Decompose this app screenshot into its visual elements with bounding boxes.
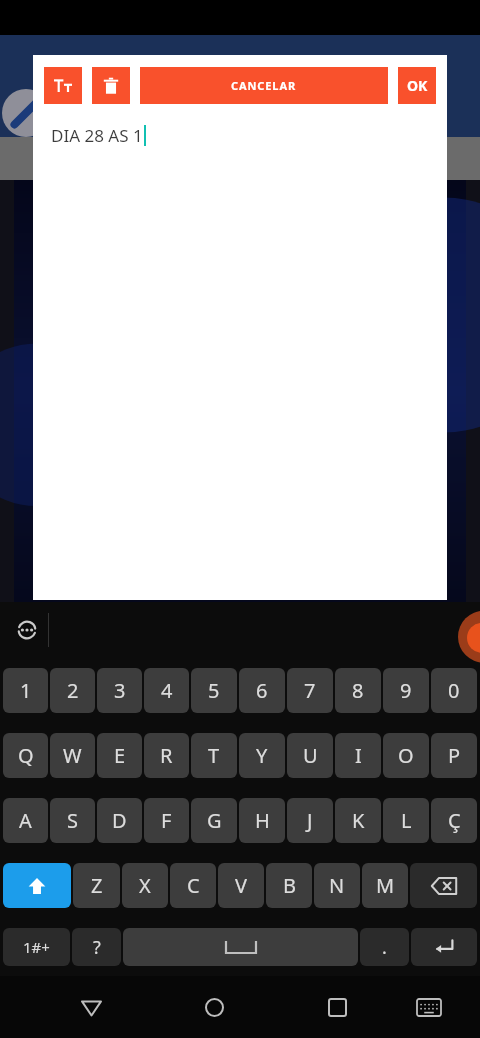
button[interactable]: Backspace — [410, 863, 477, 908]
staticText: R — [160, 742, 173, 769]
staticText: A — [19, 807, 32, 834]
button[interactable]: A — [3, 798, 48, 843]
button[interactable]: 5 — [191, 668, 237, 713]
staticText: DIA 28 AS 1 — [51, 124, 143, 147]
button[interactable]: R — [144, 733, 189, 778]
staticText: Z — [91, 872, 103, 899]
staticText: 8 — [352, 677, 364, 704]
button[interactable]: Q — [3, 733, 48, 778]
staticText: B — [283, 872, 296, 899]
staticText: E — [114, 742, 126, 769]
button[interactable]: V — [218, 863, 264, 908]
staticText: C — [187, 872, 200, 899]
button[interactable]: J — [287, 798, 333, 843]
button[interactable]: O — [383, 733, 429, 778]
staticText: S — [67, 807, 78, 834]
button[interactable]: L — [383, 798, 429, 843]
staticText: . — [382, 935, 387, 960]
staticText: 6 — [256, 677, 268, 704]
button[interactable]: I — [335, 733, 381, 778]
button[interactable]: E — [97, 733, 142, 778]
button[interactable]: 4 — [144, 668, 189, 713]
staticText: 2 — [67, 677, 79, 704]
staticText: X — [139, 872, 151, 899]
button[interactable]: T — [191, 733, 237, 778]
staticText: N — [329, 872, 345, 899]
staticText: J — [307, 807, 313, 834]
button[interactable]: Hide keyboard — [402, 980, 456, 1034]
button[interactable]: Space — [123, 928, 358, 966]
staticText: 1#+ — [23, 937, 50, 957]
staticText: T — [208, 742, 220, 769]
button[interactable]: H — [239, 798, 285, 843]
button[interactable]: Ç — [431, 798, 477, 843]
button[interactable]: Back — [64, 980, 118, 1034]
button[interactable]: ? — [72, 928, 121, 966]
button[interactable]: Z — [73, 863, 120, 908]
button[interactable]: Home — [187, 980, 241, 1034]
staticText: G — [207, 807, 222, 834]
button[interactable]: W — [50, 733, 95, 778]
button[interactable]: 7 — [287, 668, 333, 713]
staticText: H — [255, 807, 270, 834]
staticText: 1 — [20, 677, 32, 704]
staticText: D — [112, 807, 127, 834]
button[interactable]: CANCELAR — [140, 67, 388, 104]
button[interactable]: . — [360, 928, 409, 966]
button[interactable]: 1 — [3, 668, 48, 713]
button[interactable]: Text format — [44, 67, 82, 104]
staticText: 0 — [448, 677, 460, 704]
button[interactable]: Y — [239, 733, 285, 778]
staticText: P — [448, 742, 461, 769]
button[interactable]: S — [50, 798, 95, 843]
button[interactable]: Keyboard options — [6, 602, 48, 658]
staticText: Ç — [448, 807, 461, 834]
staticText: I — [355, 742, 362, 769]
staticText: O — [398, 742, 414, 769]
staticText: 5 — [208, 677, 220, 704]
button[interactable]: DIA 28 AS 1 — [51, 124, 447, 600]
button[interactable]: B — [266, 863, 312, 908]
staticText: V — [235, 872, 247, 899]
staticText: M — [376, 872, 395, 899]
staticText: CANCELAR — [231, 78, 297, 93]
button[interactable]: 9 — [383, 668, 429, 713]
button[interactable]: N — [314, 863, 360, 908]
button[interactable]: P — [431, 733, 477, 778]
button[interactable]: 0 — [431, 668, 477, 713]
button[interactable]: Enter — [411, 928, 477, 966]
button[interactable]: 1#+ — [3, 928, 70, 966]
button[interactable]: OK — [398, 67, 436, 104]
button[interactable]: Recents — [310, 980, 364, 1034]
staticText: U — [303, 742, 318, 769]
button[interactable]: G — [191, 798, 237, 843]
button[interactable]: 2 — [50, 668, 95, 713]
staticText: Q — [18, 742, 34, 769]
staticText: 4 — [161, 677, 173, 704]
staticText: 7 — [304, 677, 316, 704]
staticText: 3 — [114, 677, 126, 704]
staticText: OK — [407, 76, 428, 95]
button[interactable]: C — [170, 863, 216, 908]
staticText: ? — [93, 935, 101, 960]
staticText: Y — [256, 742, 268, 769]
staticText: L — [401, 807, 412, 834]
button[interactable]: Shift — [3, 863, 71, 908]
button[interactable]: 3 — [97, 668, 142, 713]
staticText: F — [161, 807, 172, 834]
button[interactable]: K — [335, 798, 381, 843]
staticText: K — [352, 807, 365, 834]
button[interactable]: D — [97, 798, 142, 843]
button[interactable]: 8 — [335, 668, 381, 713]
button[interactable]: F — [144, 798, 189, 843]
button[interactable]: Delete — [92, 67, 130, 104]
button[interactable]: U — [287, 733, 333, 778]
staticText: W — [63, 742, 82, 769]
button[interactable]: X — [122, 863, 168, 908]
button[interactable]: 6 — [239, 668, 285, 713]
staticText: 9 — [400, 677, 412, 704]
button[interactable]: M — [362, 863, 408, 908]
